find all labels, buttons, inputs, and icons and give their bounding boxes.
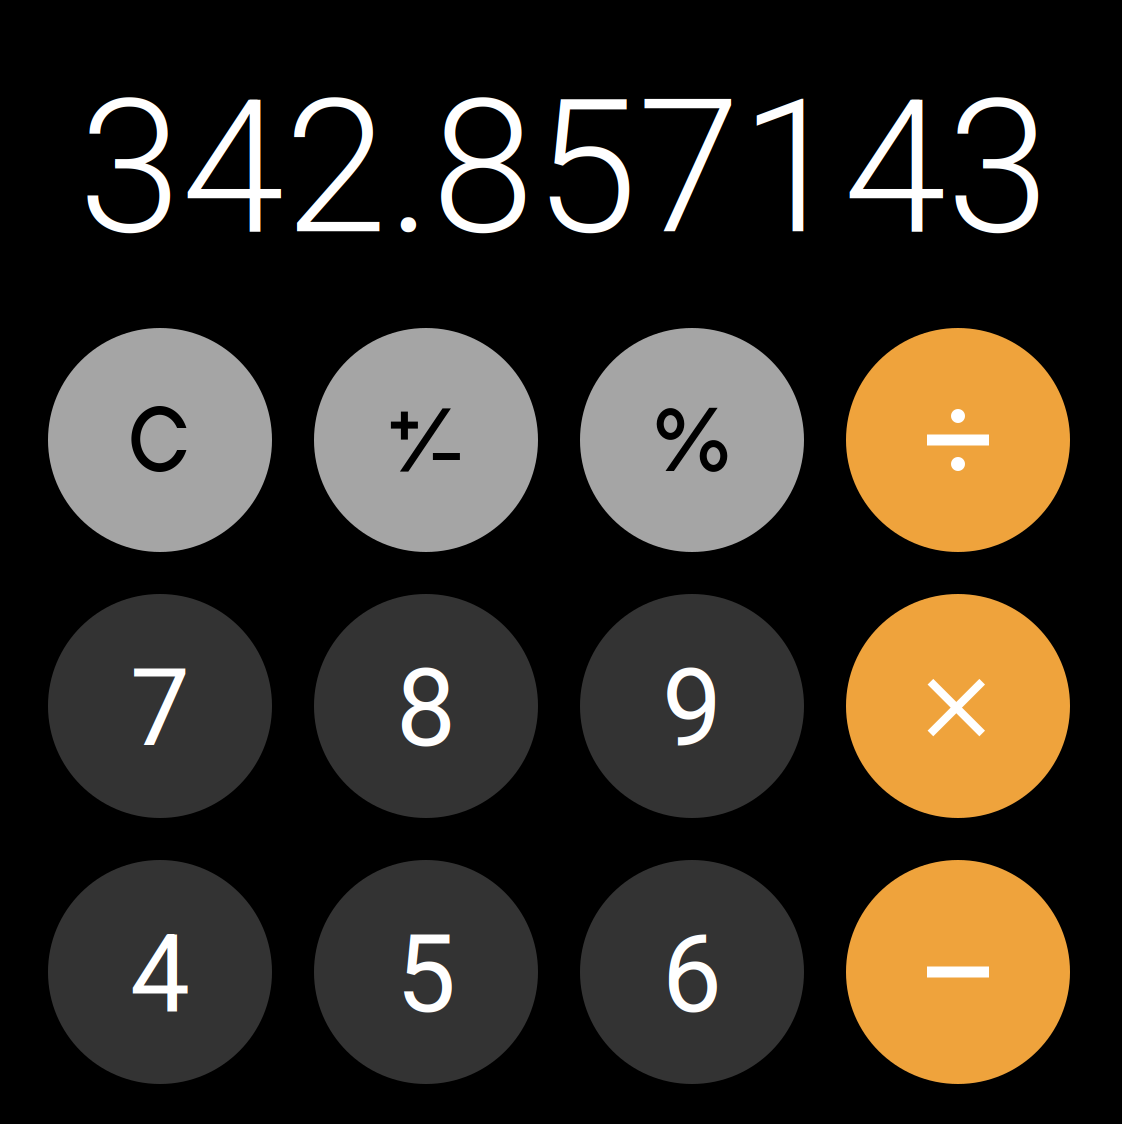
staticText: 5 [396, 912, 456, 1037]
button[interactable]: 5 [314, 860, 538, 1084]
button[interactable]: Plus minus [314, 328, 538, 552]
staticText: 6 [662, 912, 722, 1037]
staticText: 9 [662, 646, 722, 771]
button[interactable]: 6 [580, 860, 804, 1084]
button[interactable]: Multiply [846, 594, 1070, 818]
button[interactable]: Percent [580, 328, 804, 552]
staticText: 7 [130, 646, 190, 771]
button[interactable]: 7 [48, 594, 272, 818]
staticText: 4 [130, 912, 190, 1037]
button[interactable]: Divide [846, 328, 1070, 552]
staticText: 8 [396, 646, 456, 771]
button[interactable]: 9 [580, 594, 804, 818]
button[interactable]: 8 [314, 594, 538, 818]
button[interactable]: Minus [846, 860, 1070, 1084]
staticText: 342.857143 [78, 59, 1049, 277]
button[interactable]: 4 [48, 860, 272, 1084]
button[interactable]: Clear [48, 328, 272, 552]
